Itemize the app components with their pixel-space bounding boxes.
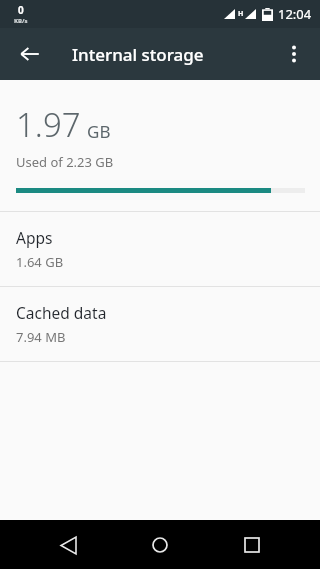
staticText: Cached data — [16, 302, 107, 323]
staticText: 0 — [18, 3, 24, 17]
staticText: KB/s — [14, 17, 28, 25]
button[interactable]: Back — [44, 521, 92, 569]
staticText: Apps — [16, 227, 53, 248]
staticText: 7.94 MB — [16, 328, 66, 346]
button[interactable]: Recent apps — [228, 521, 276, 569]
staticText: Internal storage — [72, 43, 204, 66]
button[interactable]: Apps — [0, 212, 320, 286]
staticText: Used of 2.23 GB — [16, 153, 114, 171]
button[interactable]: Home — [136, 521, 184, 569]
staticText: 1.97 — [16, 102, 81, 147]
button[interactable]: Cached data — [0, 287, 320, 361]
button[interactable]: Navigate up — [10, 34, 50, 74]
staticText: 1.64 GB — [16, 253, 64, 271]
staticText: H — [238, 9, 244, 19]
staticText: GB — [87, 120, 111, 143]
staticText: 12:04 — [278, 5, 312, 23]
button[interactable]: More options — [274, 34, 314, 74]
